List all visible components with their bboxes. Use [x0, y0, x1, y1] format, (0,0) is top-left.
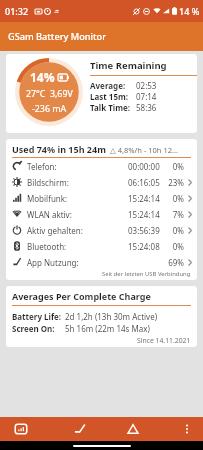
button[interactable]: Alerts — [119, 417, 147, 441]
staticText: 14% — [30, 69, 55, 85]
staticText: Aktiv gehalten: — [27, 225, 83, 236]
staticText: WLAN aktiv: — [27, 209, 72, 220]
button[interactable]: Battery history — [66, 417, 94, 441]
staticText: 5h 16m (22m 14s Max) — [65, 323, 150, 334]
button[interactable]: Mobilfunk: — [6, 190, 197, 206]
staticText: 01:32 — [5, 5, 29, 17]
staticText: 14 % — [179, 5, 200, 17]
staticText: App Nutzung: — [27, 257, 79, 268]
staticText: Battery Life: — [12, 311, 65, 322]
staticText: -236 mA — [32, 103, 67, 115]
staticText: 0% — [166, 225, 184, 236]
staticText: 03:56:39 — [128, 225, 160, 236]
staticText: 0% — [166, 193, 184, 204]
staticText: 0% — [166, 241, 184, 252]
staticText: 15:24:14 — [128, 193, 160, 204]
staticText: Talk Time: — [90, 102, 133, 113]
staticText: 07:14 — [136, 91, 157, 102]
button[interactable]: App usage chart — [7, 417, 35, 441]
staticText: △ 4,8%/h - 10h 12... — [110, 145, 179, 155]
staticText: 58:36 — [136, 102, 157, 113]
staticText: 23% — [166, 177, 184, 188]
staticText: Since 14.11.2021 — [137, 336, 191, 345]
staticText: GSam Battery Monitor — [8, 30, 107, 43]
button[interactable]: Telefon: — [6, 158, 197, 174]
staticText: 15:24:14 — [128, 209, 160, 220]
button[interactable]: App Nutzung: — [6, 254, 197, 270]
staticText: 7% — [166, 209, 184, 220]
staticText: Used 74% in 15h 24m — [12, 143, 106, 155]
staticText: Bluetooth: — [27, 241, 67, 252]
staticText: Averages Per Complete Charge — [12, 290, 151, 302]
staticText: 69% — [166, 257, 184, 268]
staticText: Seit der letzten USB Verbindung — [102, 270, 191, 278]
staticText: 27°C 3,69V — [26, 88, 73, 100]
staticText: Last 15m: — [90, 91, 133, 102]
staticText: Screen On: — [12, 323, 65, 334]
staticText: Time Remaining — [90, 59, 167, 72]
staticText: Bildschirm: — [27, 177, 69, 188]
staticText: 06:16:05 — [128, 177, 160, 188]
button[interactable]: Bluetooth: — [6, 238, 197, 254]
button[interactable]: More options — [173, 417, 201, 441]
button[interactable]: Bildschirm: — [6, 174, 197, 190]
button[interactable]: WLAN aktiv: — [6, 206, 197, 222]
staticText: 15:24:08 — [128, 241, 160, 252]
staticText: 0% — [166, 161, 184, 172]
staticText: Mobilfunk: — [27, 193, 68, 204]
staticText: 02:53 — [136, 80, 157, 91]
staticText: 00:00:00 — [128, 161, 160, 172]
staticText: Average: — [90, 80, 133, 91]
staticText: 2d 1,2h (13h 30m Active) — [65, 311, 158, 322]
staticText: Telefon: — [27, 161, 57, 172]
button[interactable]: Aktiv gehalten: — [6, 222, 197, 238]
